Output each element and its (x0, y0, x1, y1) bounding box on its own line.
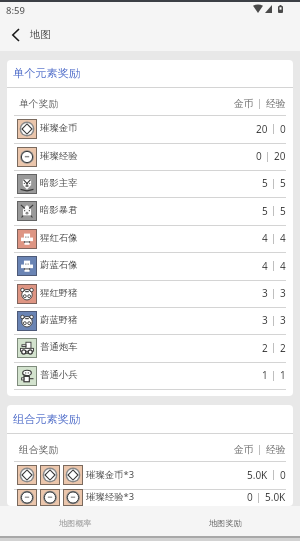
staticText: 5 (280, 176, 286, 190)
staticText: 璀璨经验*3 (86, 490, 135, 503)
staticText: 0 (247, 490, 253, 504)
staticText: 普通小兵 (40, 369, 78, 381)
button[interactable]: 璀璨金币 (7, 115, 293, 143)
staticText: 璀璨经验 (40, 150, 78, 162)
staticText: 经验 (266, 98, 286, 110)
button[interactable]: 蔚蓝野猪 (7, 307, 293, 334)
staticText: 0 (280, 122, 286, 136)
staticText: 地图 (30, 28, 51, 41)
staticText: 4 (280, 259, 286, 273)
staticText: 璀璨金币*3 (86, 468, 135, 481)
staticText: 组合奖励 (19, 444, 59, 456)
staticText: 猩红野猪 (40, 287, 78, 299)
staticText: 2 (280, 341, 286, 355)
staticText: 单个元素奖励 (13, 66, 81, 80)
staticText: 璀璨金币 (40, 122, 78, 134)
staticText: 3 (280, 286, 286, 300)
button[interactable]: 普通炮车 (7, 334, 293, 362)
staticText: 4 (262, 259, 268, 273)
button[interactable]: 地图概率 (0, 506, 150, 536)
staticText: 0 (280, 468, 286, 482)
staticText: 2 (262, 341, 268, 355)
staticText: 地图概率 (59, 518, 92, 528)
button[interactable]: 璀璨经验 (7, 143, 293, 170)
button[interactable]: 璀璨金币*3 (7, 461, 293, 489)
staticText: 5.0K (265, 490, 286, 504)
staticText: 暗影主宰 (40, 177, 78, 189)
staticText: 金币 (234, 98, 254, 110)
staticText: 20 (256, 122, 268, 136)
staticText: 猩红石像 (40, 232, 78, 244)
staticText: 组合元素奖励 (13, 412, 81, 426)
staticText: 4 (280, 231, 286, 245)
staticText: 5 (262, 204, 268, 218)
button[interactable]: 猩红野猪 (7, 280, 293, 307)
button[interactable]: 暗影暴君 (7, 197, 293, 225)
button[interactable]: Back (0, 20, 30, 50)
button[interactable]: 地图奖励 (150, 506, 300, 536)
button[interactable]: 普通小兵 (7, 362, 293, 389)
staticText: 单个奖励 (19, 98, 59, 110)
staticText: 8:59 (6, 4, 25, 17)
staticText: 5 (280, 204, 286, 218)
staticText: 3 (262, 286, 268, 300)
button[interactable]: 蔚蓝石像 (7, 252, 293, 280)
staticText: 5 (262, 176, 268, 190)
staticText: 蔚蓝石像 (40, 259, 78, 271)
staticText: 蔚蓝野猪 (40, 314, 78, 326)
staticText: 3 (280, 313, 286, 327)
staticText: 经验 (266, 444, 286, 456)
staticText: 5.0K (247, 468, 268, 482)
staticText: 1 (280, 368, 286, 382)
staticText: 0 (256, 149, 262, 163)
button[interactable]: 猩红石像 (7, 225, 293, 252)
button[interactable]: 暗影主宰 (7, 170, 293, 197)
staticText: 地图奖励 (209, 518, 242, 528)
staticText: 1 (262, 368, 268, 382)
staticText: 金币 (234, 444, 254, 456)
staticText: 4 (262, 231, 268, 245)
staticText: 3 (262, 313, 268, 327)
staticText: 暗影暴君 (40, 204, 78, 216)
staticText: 普通炮车 (40, 341, 78, 353)
staticText: 20 (274, 149, 286, 163)
button[interactable]: 璀璨经验*3 (7, 489, 293, 506)
